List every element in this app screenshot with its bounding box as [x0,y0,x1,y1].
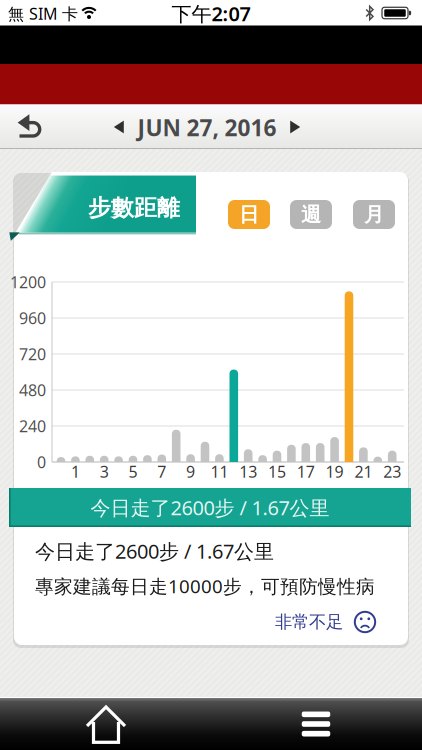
staticText: 無 SIM 卡 [8,3,78,24]
staticText: 5 [128,461,137,482]
staticText: 專家建議每日走10000步，可預防慢性病 [35,574,375,598]
staticText: 7 [157,461,166,482]
staticText: 3 [100,461,109,482]
staticText: 今日走了2600步 / 1.67公里 [35,538,274,564]
staticText: 15 [268,461,286,482]
staticText: 720 [19,343,46,365]
staticText: 1200 [10,271,46,293]
staticText: 21 [354,461,372,482]
staticText: 480 [19,379,46,401]
staticText: 步數距離 [88,194,180,222]
staticText: 日 [239,202,259,227]
staticText: 9 [186,461,195,482]
staticText: 23 [383,461,401,482]
staticText: 週 [301,202,321,227]
staticText: 19 [326,461,344,482]
staticText: 非常不足 [275,611,343,633]
staticText: 11 [210,461,228,482]
staticText: 17 [297,461,315,482]
staticText: 今日走了2600步 / 1.67公里 [90,494,329,521]
staticText: 月 [364,202,384,227]
staticText: 1 [71,461,80,482]
staticText: 13 [239,461,257,482]
staticText: 0 [37,451,46,473]
staticText: JUN 27, 2016 [137,112,276,142]
staticText: 下午2:07 [171,0,250,27]
staticText: 960 [19,307,46,329]
staticText: 240 [19,415,46,437]
